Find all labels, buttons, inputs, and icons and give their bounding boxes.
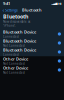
button[interactable]: Bluetooth Device bbox=[0, 38, 64, 47]
staticText: Other Device bbox=[3, 56, 28, 62]
staticText: Bluetooth bbox=[3, 13, 28, 20]
staticText: Bluetooth Device bbox=[3, 47, 36, 53]
button[interactable]: Bluetooth Device bbox=[0, 29, 64, 38]
button[interactable]: ‹ bbox=[1, 6, 19, 14]
staticText: Bluetooth bbox=[22, 7, 42, 13]
staticText: 9:41 bbox=[3, 1, 10, 6]
staticText: Connected bbox=[3, 53, 19, 56]
staticText: “iPhone”. bbox=[3, 24, 16, 27]
button[interactable]: Other Device bbox=[0, 65, 64, 74]
staticText: Now discoverable as bbox=[3, 20, 30, 23]
staticText: Not Connected bbox=[3, 44, 25, 47]
staticText: ◗ bbox=[58, 2, 59, 5]
staticText: ‹ bbox=[2, 6, 4, 14]
staticText: Not Connected bbox=[3, 62, 25, 65]
staticText: Connected bbox=[3, 35, 19, 38]
staticText: ▮ bbox=[60, 2, 61, 5]
staticText: ▂▄▆ bbox=[51, 2, 57, 5]
staticText: Other Device bbox=[3, 65, 28, 71]
staticText: Settings bbox=[5, 7, 18, 13]
button[interactable]: Bluetooth Device bbox=[0, 47, 64, 56]
staticText: Bluetooth Device bbox=[3, 29, 36, 35]
staticText: Bluetooth Device bbox=[3, 38, 36, 44]
staticText: Not Connected bbox=[3, 71, 25, 74]
button[interactable]: Other Device bbox=[0, 56, 64, 65]
